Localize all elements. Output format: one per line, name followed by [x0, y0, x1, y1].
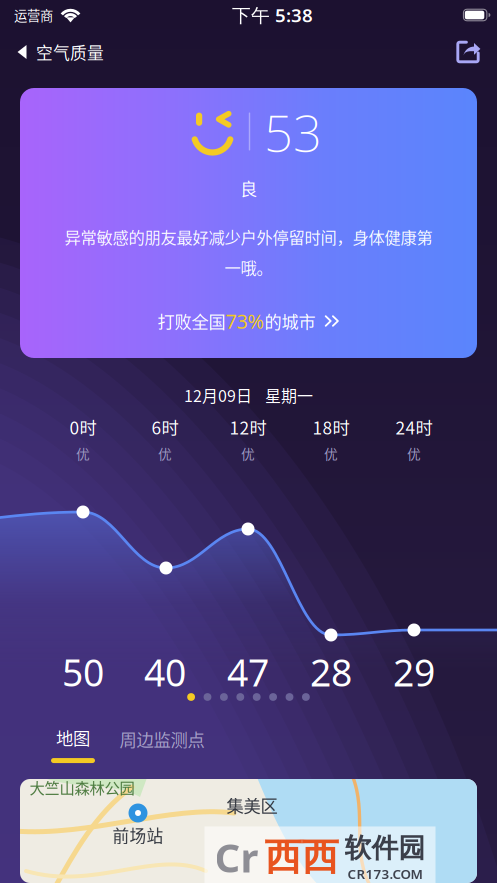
staticText: 周边监测点 [119, 726, 204, 752]
staticText: 53 [264, 98, 322, 166]
staticText: 一哦。 [224, 255, 272, 279]
staticText: 优 [76, 444, 90, 463]
staticText: 0时 [69, 414, 96, 440]
button[interactable]: 空气质量 [0, 30, 126, 74]
button[interactable]: 地图 [20, 779, 477, 883]
staticText: 打败全国 [157, 308, 225, 333]
staticText: 18时 [312, 414, 349, 440]
button[interactable]: 打败全国 [141, 299, 355, 343]
button[interactable]: 分享 [434, 30, 497, 74]
staticText: 地图 [56, 725, 90, 750]
staticText: 29 [393, 647, 435, 697]
staticText: 西西 [264, 833, 338, 880]
staticText: 星期一 [265, 383, 313, 407]
staticText: 软件园 [344, 831, 425, 865]
staticText: 优 [324, 444, 338, 463]
button[interactable]: 周边监测点 [109, 722, 214, 756]
staticText: 6时 [151, 414, 178, 440]
staticText: 下午 5:38 [232, 3, 313, 27]
staticText: 良 [240, 175, 257, 201]
staticText: 24时 [395, 414, 432, 440]
staticText: 异常敏感的朋友最好减少户外停留时间，身体健康第 [64, 225, 432, 248]
staticText: 空气质量 [36, 40, 104, 64]
staticText: 40 [144, 647, 186, 697]
staticText: 73% [225, 308, 264, 334]
staticText: 前场站 [112, 823, 163, 847]
staticText: 的城市 [264, 308, 315, 333]
staticText: 47 [227, 647, 269, 697]
staticText: 大竺山森林公园 [29, 776, 134, 798]
staticText: 优 [158, 444, 172, 463]
staticText: 优 [241, 444, 255, 463]
staticText: 集美区 [226, 792, 277, 818]
staticText: 12时 [229, 414, 266, 440]
staticText: 12月09日 [184, 383, 252, 407]
staticText: 28 [310, 647, 352, 697]
staticText: Cr [214, 830, 258, 883]
staticText: CR173.COM [347, 865, 422, 883]
button[interactable]: 地图 [41, 721, 105, 767]
staticText: 运营商 [14, 5, 53, 25]
staticText: 50 [62, 647, 104, 697]
staticText: 优 [407, 444, 421, 463]
